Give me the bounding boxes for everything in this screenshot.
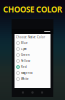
button[interactable]: Recent apps [41,91,43,93]
button[interactable]: Red [14,64,50,70]
staticText: CHOOSE COLOR [3,4,62,15]
staticText: Choose Native Color [16,35,45,39]
staticText: White [21,77,29,81]
button[interactable]: Green [14,52,50,58]
button[interactable]: Back [22,91,24,93]
button[interactable]: Cyan [14,46,50,52]
staticText: Yellow [21,59,30,63]
staticText: Red [21,65,27,69]
button[interactable]: Home [31,91,34,94]
button[interactable]: Magenta [14,70,50,76]
button[interactable]: White [14,76,50,82]
staticText: Cyan [21,47,27,51]
button[interactable]: Blue [14,40,50,46]
staticText: Blue [21,41,28,45]
staticText: Green [21,53,30,57]
staticText: Magenta [21,71,32,75]
button[interactable]: Yellow [14,58,50,64]
